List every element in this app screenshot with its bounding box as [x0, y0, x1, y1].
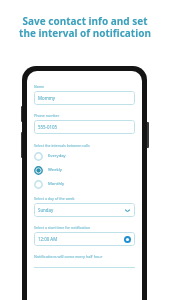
staticText: Monthly [48, 181, 65, 187]
staticText: Weekly [48, 167, 62, 173]
staticText: 555-0105 [38, 124, 57, 130]
staticText: Save contact info and set the interval o… [19, 14, 151, 40]
staticText: Select a day of the week [34, 196, 75, 201]
staticText: Select a start time for notification [34, 225, 91, 230]
button[interactable]: Weekly [34, 163, 135, 177]
staticText: Phone number [34, 113, 60, 118]
staticText: Everyday [48, 153, 66, 159]
staticText: Mommy [38, 95, 56, 101]
staticText: 12:00 AM [38, 236, 58, 242]
button[interactable]: Mommy [34, 91, 135, 105]
staticText: Sunday [38, 207, 54, 213]
button[interactable]: 555-0105 [34, 120, 135, 134]
button[interactable]: Everyday [34, 149, 135, 163]
staticText: Name [34, 84, 45, 89]
button[interactable]: Monthly [34, 177, 135, 191]
other: Pick time [124, 236, 131, 243]
staticText: Select the intervals between calls [34, 143, 90, 148]
button[interactable]: 12:00 AM [34, 232, 135, 246]
button[interactable]: Sunday [34, 203, 135, 217]
other: Open day picker [124, 207, 131, 214]
staticText: Notifications will come every half hour [34, 254, 103, 259]
